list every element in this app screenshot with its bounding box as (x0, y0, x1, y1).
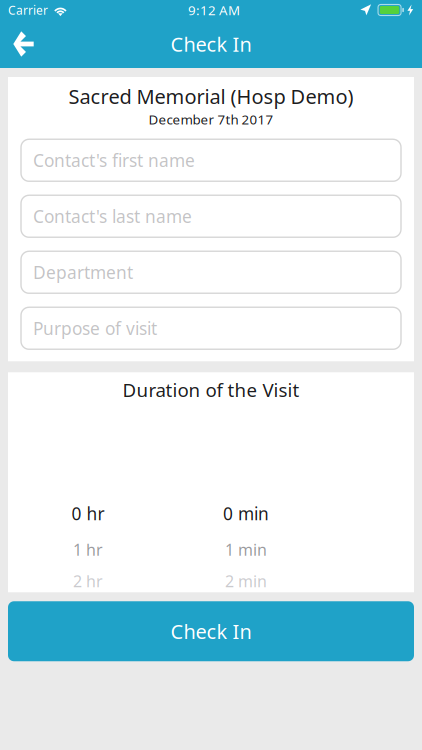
staticText: 0 hr (71, 502, 104, 525)
staticText: 2 min (225, 570, 267, 592)
button[interactable]: Check In (8, 601, 414, 661)
staticText: Carrier (8, 2, 48, 18)
staticText: Contact's first name (33, 149, 195, 172)
staticText: 0 min (223, 502, 269, 525)
staticText: Check In (170, 618, 251, 645)
staticText: Contact's last name (33, 205, 192, 228)
button[interactable]: Back (0, 22, 47, 66)
staticText: Sacred Memorial (Hosp Demo) (68, 83, 353, 110)
staticText: 1 hr (73, 539, 103, 560)
staticText: Purpose of visit (33, 317, 157, 340)
staticText: 9:12 AM (188, 1, 240, 19)
button[interactable]: Department (21, 251, 401, 293)
staticText: 2 hr (73, 570, 103, 592)
staticText: Duration of the Visit (122, 377, 299, 402)
staticText: 1 min (225, 539, 267, 560)
staticText: Department (33, 261, 133, 284)
button[interactable]: Contact's first name (21, 139, 401, 181)
staticText: Check In (170, 31, 251, 57)
button[interactable]: Contact's last name (21, 195, 401, 237)
staticText: December 7th 2017 (148, 111, 273, 128)
button[interactable]: Purpose of visit (21, 307, 401, 349)
